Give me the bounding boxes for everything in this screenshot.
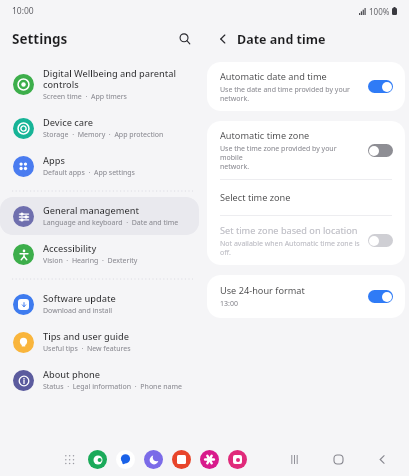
- button[interactable]: Home: [325, 446, 351, 472]
- staticText: Use the date and time provided by your n…: [220, 85, 350, 103]
- button[interactable]: Set time zone based on location: [207, 216, 405, 265]
- staticText: General management: [43, 204, 140, 217]
- button[interactable]: Search: [175, 29, 195, 49]
- staticText: Software update: [43, 292, 116, 305]
- staticText: Set time zone based on location: [220, 224, 358, 237]
- staticText: 100%: [369, 6, 390, 17]
- button[interactable]: Internet: [144, 450, 163, 469]
- staticText: About phone: [43, 368, 101, 381]
- staticText: Storage · Memory · App protection: [43, 130, 164, 140]
- staticText: Not available when Automatic time zone i…: [220, 239, 360, 257]
- button[interactable]: Gallery: [200, 450, 219, 469]
- button[interactable]: General management: [0, 197, 199, 235]
- button[interactable]: Device care: [0, 109, 199, 147]
- staticText: Download and install: [43, 306, 113, 316]
- button[interactable]: Automatic date and time: [207, 62, 405, 111]
- button[interactable]: Use 24-hour format: [207, 275, 405, 318]
- staticText: Use the time zone provided by your mobil…: [220, 144, 360, 171]
- button[interactable]: Apps: [60, 450, 79, 469]
- button[interactable]: Software update: [0, 285, 199, 323]
- button[interactable]: Toggle: [368, 234, 393, 247]
- staticText: 10:00: [12, 5, 34, 17]
- staticText: Select time zone: [220, 191, 291, 204]
- staticText: Date and time: [237, 31, 326, 48]
- staticText: Useful tips · New features: [43, 344, 131, 354]
- button[interactable]: Tips and user guide: [0, 323, 199, 361]
- button[interactable]: Back: [213, 29, 233, 49]
- staticText: Screen time · App timers: [43, 92, 127, 102]
- staticText: Language and keyboard · Date and time: [43, 218, 179, 228]
- button[interactable]: Back: [369, 446, 395, 472]
- button[interactable]: Camera: [228, 450, 247, 469]
- staticText: Automatic date and time: [220, 70, 327, 83]
- button[interactable]: Accessibility: [0, 235, 199, 273]
- button[interactable]: Messages: [116, 450, 135, 469]
- button[interactable]: Automatic time zone: [207, 121, 405, 179]
- button[interactable]: Apps: [0, 147, 199, 185]
- button[interactable]: Toggle: [368, 80, 393, 93]
- staticText: Settings: [12, 30, 68, 48]
- staticText: Use 24-hour format: [220, 284, 305, 297]
- staticText: Digital Wellbeing and parental controls: [43, 67, 177, 91]
- staticText: Device care: [43, 116, 94, 129]
- staticText: Apps: [43, 154, 65, 167]
- button[interactable]: Select time zone: [207, 180, 405, 215]
- staticText: Vision · Hearing · Dexterity: [43, 256, 138, 266]
- staticText: Accessibility: [43, 242, 97, 255]
- button[interactable]: Store: [172, 450, 191, 469]
- button[interactable]: Recents: [281, 446, 307, 472]
- staticText: Tips and user guide: [43, 330, 129, 343]
- staticText: Automatic time zone: [220, 129, 310, 142]
- button[interactable]: Phone: [88, 450, 107, 469]
- button[interactable]: Digital Wellbeing and parental controls: [0, 60, 199, 109]
- button[interactable]: Toggle: [368, 144, 393, 157]
- staticText: 13:00: [220, 299, 238, 309]
- button[interactable]: About phone: [0, 361, 199, 399]
- staticText: Default apps · App settings: [43, 168, 135, 178]
- staticText: Status · Legal information · Phone name: [43, 382, 182, 392]
- button[interactable]: Toggle: [368, 290, 393, 303]
